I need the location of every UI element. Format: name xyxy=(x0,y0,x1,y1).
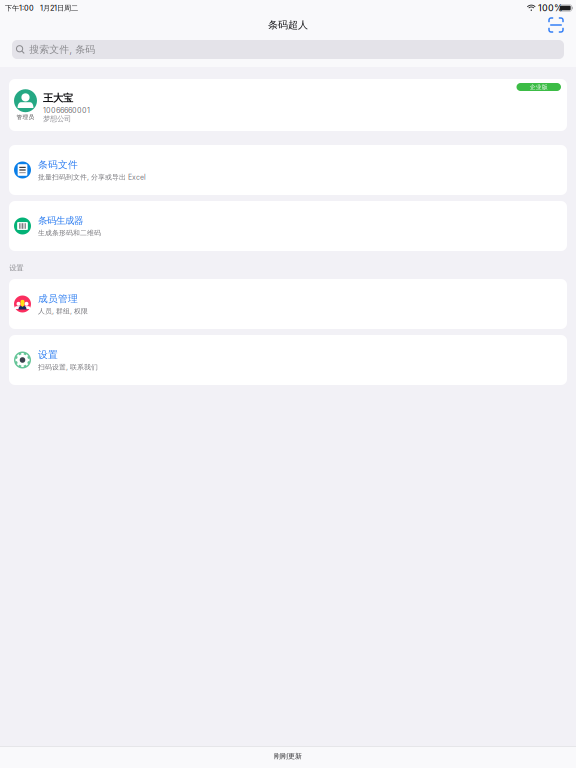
button[interactable]: Scan barcode xyxy=(545,14,567,36)
staticText: 设置 xyxy=(9,263,23,273)
staticText: 成员管理 xyxy=(38,292,78,305)
button[interactable]: 条码文件 xyxy=(9,145,567,195)
staticText: 搜索文件, 条码 xyxy=(29,43,95,56)
button[interactable]: 设置 xyxy=(9,335,567,385)
staticText: 管理员 xyxy=(16,114,34,121)
staticText: 王大宝 xyxy=(43,92,73,104)
staticText: 设置 xyxy=(38,348,58,361)
staticText: 条码生成器 xyxy=(38,215,83,227)
staticText: 扫码设置, 联系我们 xyxy=(38,363,98,371)
staticText: 条码超人 xyxy=(268,19,308,31)
staticText: 下午1:00 1月21日周二 xyxy=(5,3,78,13)
button[interactable]: 条码生成器 xyxy=(9,201,567,251)
staticText: 10066660001 xyxy=(43,106,90,115)
staticText: 生成条形码和二维码 xyxy=(38,229,101,237)
staticText: 人员, 群组, 权限 xyxy=(38,307,88,315)
staticText: 条码文件 xyxy=(38,158,78,171)
button[interactable]: 成员管理 xyxy=(9,279,567,329)
staticText: 100% xyxy=(538,3,563,13)
button[interactable]: 管理员 xyxy=(9,79,567,131)
staticText: 刚刚更新 xyxy=(274,752,302,761)
button[interactable]: 搜索文件, 条码 xyxy=(12,40,564,59)
staticText: 批量扫码到文件, 分享或导出 Excel xyxy=(38,173,146,181)
staticText: 企业版 xyxy=(530,83,548,91)
staticText: 梦想公司 xyxy=(43,114,71,123)
